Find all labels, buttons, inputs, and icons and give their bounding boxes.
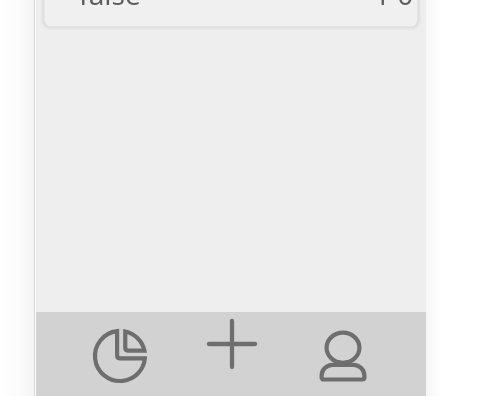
button[interactable]: false — [42, 0, 419, 28]
button[interactable]: Reports — [78, 314, 162, 396]
staticText: false — [79, 0, 141, 13]
button[interactable]: Add — [190, 302, 274, 386]
button[interactable]: Account — [301, 314, 385, 396]
staticText: 1 0 — [374, 0, 414, 13]
